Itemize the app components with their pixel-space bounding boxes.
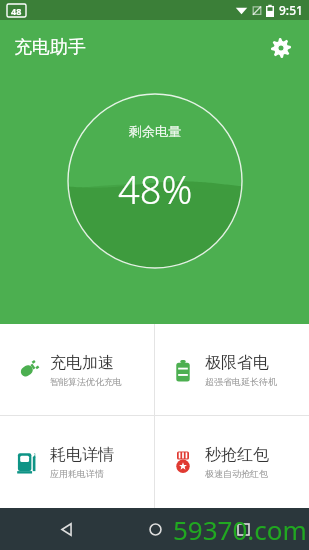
button[interactable]: Settings	[263, 30, 299, 66]
button[interactable]: Back	[44, 508, 88, 550]
staticText: 极速自动抢红包	[205, 468, 268, 479]
staticText: 超强省电延长待机	[205, 376, 277, 387]
staticText: 极限省电	[205, 353, 269, 373]
staticText: 智能算法优化充电	[50, 376, 122, 387]
staticText: 耗电详情	[50, 445, 114, 465]
button[interactable]: 极限省电	[155, 324, 309, 415]
staticText: 59370.com	[173, 512, 307, 547]
button[interactable]: 耗电详情	[0, 416, 154, 508]
staticText: 剩余电量	[129, 123, 181, 139]
button[interactable]: 充电加速	[0, 324, 154, 415]
button[interactable]: Home	[133, 508, 177, 550]
staticText: 48%	[118, 163, 193, 215]
staticText: 应用耗电详情	[50, 468, 104, 479]
staticText: 充电加速	[50, 353, 114, 373]
staticText: 充电助手	[14, 36, 86, 59]
button[interactable]: 秒抢红包	[155, 416, 309, 508]
staticText: 秒抢红包	[205, 445, 269, 465]
staticText: 48	[11, 5, 22, 17]
staticText: 9:51	[279, 2, 303, 18]
button[interactable]: Recent apps	[221, 508, 265, 550]
